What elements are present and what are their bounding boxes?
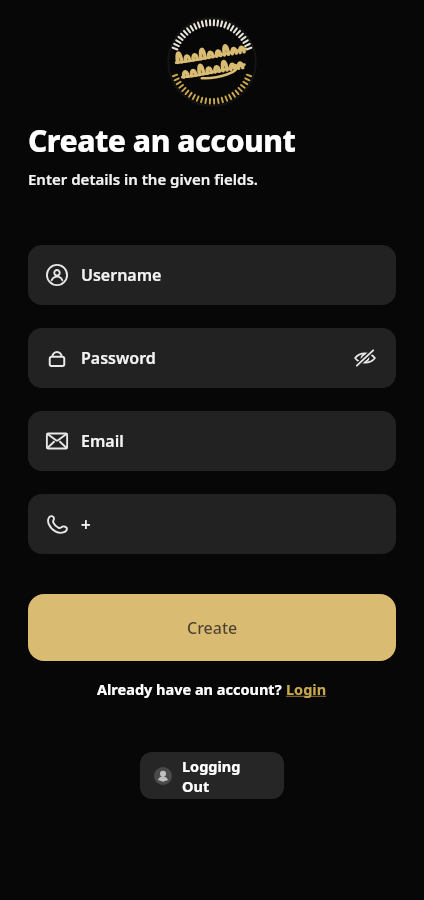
staticText: + xyxy=(81,513,91,536)
staticText: Logging Out xyxy=(182,756,270,796)
button[interactable]: Email xyxy=(28,411,396,471)
button[interactable]: Username xyxy=(28,245,396,305)
button[interactable]: Login xyxy=(286,679,327,699)
button[interactable]: Logging Out xyxy=(140,752,284,799)
button[interactable]: + xyxy=(28,494,396,554)
staticText: Password xyxy=(81,347,156,369)
staticText: Login xyxy=(286,679,327,699)
staticText: Username xyxy=(81,264,162,286)
staticText: Already have an account? xyxy=(97,679,286,699)
staticText: Email xyxy=(81,430,124,452)
button[interactable]: Password xyxy=(28,328,396,388)
staticText: Enter details in the given fields. xyxy=(28,169,258,189)
other: Melanated Audacity logo xyxy=(164,14,260,110)
staticText: Create an account xyxy=(28,120,296,161)
button[interactable]: Create xyxy=(28,594,396,661)
button[interactable]: Show password xyxy=(352,345,378,371)
staticText: Create xyxy=(187,617,238,639)
